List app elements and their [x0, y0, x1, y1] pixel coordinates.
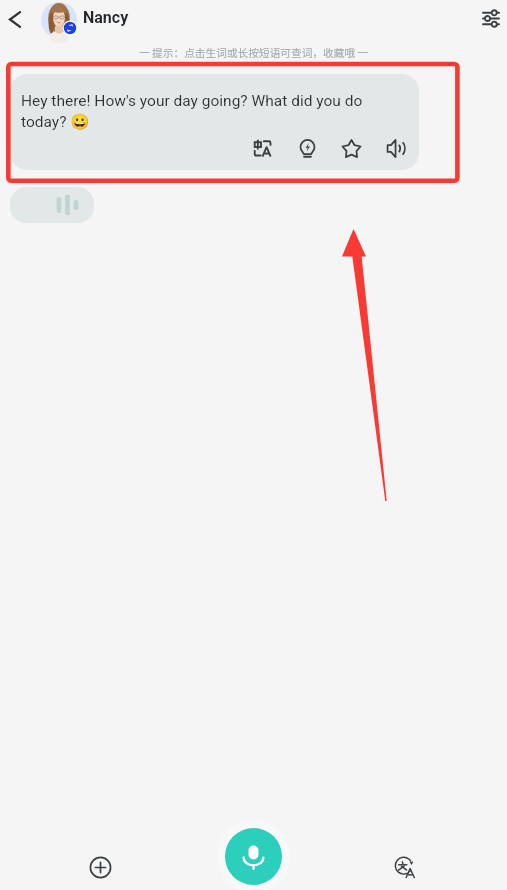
- button[interactable]: Favorite: [334, 131, 368, 165]
- button[interactable]: Record voice message: [225, 828, 282, 885]
- button[interactable]: Explain: [290, 131, 324, 165]
- staticText: 一 提示：点击生词或长按短语可查词，收藏哦 一: [139, 45, 369, 60]
- button[interactable]: Loading reply: [10, 187, 94, 223]
- staticText: Nancy: [83, 8, 129, 27]
- button[interactable]: Translate: [245, 131, 279, 165]
- button[interactable]: Settings: [474, 2, 506, 34]
- button[interactable]: Add attachment: [85, 852, 116, 883]
- button[interactable]: Translate: [390, 852, 421, 883]
- button[interactable]: Hey there! How's your day going? What di…: [10, 74, 419, 170]
- staticText: Hey there! How's your day going? What di…: [21, 92, 366, 131]
- button[interactable]: Back: [0, 3, 33, 36]
- button[interactable]: Play audio: [379, 131, 413, 165]
